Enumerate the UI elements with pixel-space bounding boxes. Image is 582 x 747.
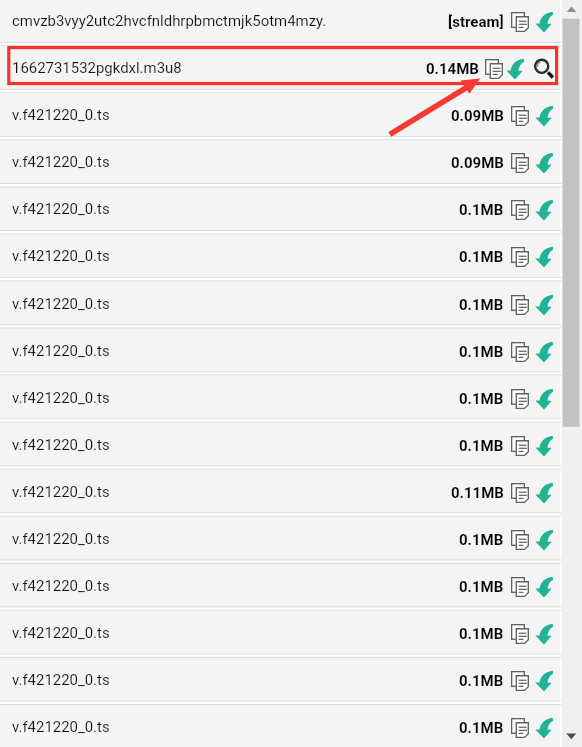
button[interactable]: Copy link — [511, 483, 530, 503]
button[interactable]: Download — [535, 11, 553, 33]
button[interactable]: Copy link — [511, 577, 530, 597]
button[interactable]: v.f421220_0.ts — [0, 329, 560, 372]
staticText: v.f421220_0.ts — [12, 342, 110, 360]
staticText: cmvzb3vyy2utc2hvcfnldhrpbmctmjk5otm4mzy. — [12, 12, 327, 30]
button[interactable]: v.f421220_0.ts — [0, 564, 560, 607]
button[interactable]: v.f421220_0.ts — [0, 187, 560, 230]
button[interactable]: Copy link — [511, 342, 530, 362]
staticText: v.f421220_0.ts — [12, 624, 110, 642]
button[interactable]: v.f421220_0.ts — [0, 611, 560, 654]
staticText: v.f421220_0.ts — [12, 200, 110, 218]
staticText: 0.1MB — [459, 719, 504, 737]
staticText: v.f421220_0.ts — [12, 295, 110, 313]
button[interactable]: Download — [535, 152, 553, 174]
staticText: v.f421220_0.ts — [12, 153, 110, 171]
button[interactable]: Download — [535, 576, 553, 598]
staticText: 0.1MB — [459, 343, 504, 361]
button[interactable]: Copy link — [485, 59, 504, 79]
button[interactable]: Download — [535, 105, 553, 127]
staticText: 0.1MB — [459, 390, 504, 408]
button[interactable]: v.f421220_0.ts — [0, 517, 560, 560]
staticText: 0.1MB — [459, 201, 504, 219]
button[interactable]: v.f421220_0.ts — [0, 376, 560, 419]
button[interactable]: Download — [535, 435, 553, 457]
staticText: 0.1MB — [459, 578, 504, 596]
staticText: v.f421220_0.ts — [12, 389, 110, 407]
staticText: v.f421220_0.ts — [12, 671, 110, 689]
button[interactable]: Copy link — [511, 718, 530, 738]
button[interactable]: Copy link — [511, 671, 530, 691]
staticText: 0.1MB — [459, 672, 504, 690]
button[interactable]: Copy link — [511, 530, 530, 550]
staticText: v.f421220_0.ts — [12, 530, 110, 548]
button[interactable]: v.f421220_0.ts — [0, 282, 560, 325]
button[interactable]: Download — [535, 294, 553, 316]
button[interactable]: Download — [535, 199, 553, 221]
button[interactable]: Download — [535, 623, 553, 645]
button[interactable]: Search — [533, 57, 555, 79]
button[interactable]: v.f421220_0.ts — [0, 658, 560, 701]
staticText: 0.1MB — [459, 437, 504, 455]
staticText: 0.14MB — [426, 60, 479, 78]
button[interactable]: Copy link — [511, 106, 530, 126]
button[interactable]: v.f421220_0.ts — [0, 140, 560, 183]
button[interactable]: Download — [535, 529, 553, 551]
button[interactable]: Download — [535, 246, 553, 268]
button[interactable]: v.f421220_0.ts — [0, 705, 560, 747]
staticText: 0.11MB — [451, 484, 504, 502]
staticText: v.f421220_0.ts — [12, 247, 110, 265]
button[interactable]: Download — [535, 670, 553, 692]
button[interactable]: Download — [535, 717, 553, 739]
staticText: 0.1MB — [459, 531, 504, 549]
staticText: v.f421220_0.ts — [12, 718, 110, 736]
button[interactable]: Copy link — [511, 389, 530, 409]
button[interactable]: v.f421220_0.ts — [0, 234, 560, 277]
staticText: v.f421220_0.ts — [12, 577, 110, 595]
button[interactable]: Download — [535, 341, 553, 363]
button[interactable]: cmvzb3vyy2utc2hvcfnldhrpbmctmjk5otm4mzy. — [0, 0, 560, 42]
staticText: 0.09MB — [451, 154, 504, 172]
staticText: [stream] — [448, 13, 504, 31]
button[interactable]: v.f421220_0.ts — [0, 93, 560, 136]
staticText: v.f421220_0.ts — [12, 483, 110, 501]
button[interactable]: Download — [535, 388, 553, 410]
button[interactable]: Copy link — [511, 153, 530, 173]
button[interactable]: 1662731532pgkdxl.m3u8 — [0, 46, 560, 89]
staticText: 0.1MB — [459, 296, 504, 314]
staticText: v.f421220_0.ts — [12, 436, 110, 454]
staticText: 0.1MB — [459, 625, 504, 643]
button[interactable]: Copy link — [511, 12, 530, 32]
button[interactable]: Copy link — [511, 200, 530, 220]
staticText: 1662731532pgkdxl.m3u8 — [12, 59, 182, 77]
button[interactable]: v.f421220_0.ts — [0, 470, 560, 513]
button[interactable]: Copy link — [511, 247, 530, 267]
button[interactable]: Copy link — [511, 624, 530, 644]
button[interactable]: Copy link — [511, 295, 530, 315]
button[interactable]: Download — [535, 482, 553, 504]
button[interactable]: Copy link — [511, 436, 530, 456]
button[interactable]: v.f421220_0.ts — [0, 423, 560, 466]
staticText: 0.1MB — [459, 248, 504, 266]
button[interactable]: Download — [506, 58, 524, 80]
staticText: 0.09MB — [451, 107, 504, 125]
staticText: v.f421220_0.ts — [12, 106, 110, 124]
